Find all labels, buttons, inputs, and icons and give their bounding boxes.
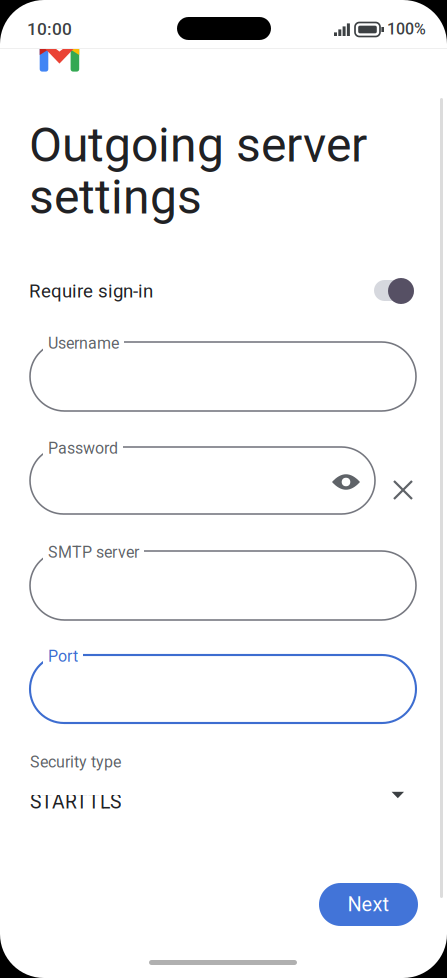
staticText: Port: [48, 647, 78, 666]
staticText: Next: [347, 893, 389, 916]
button[interactable]: Require sign-in: [29, 265, 417, 317]
button[interactable]: Clear password: [0, 0, 447, 978]
staticText: Username: [48, 334, 119, 353]
staticText: Outgoing server: [29, 117, 367, 173]
staticText: SMTP server: [48, 543, 139, 562]
staticText: Password: [48, 439, 118, 458]
staticText: Require sign-in: [29, 280, 153, 302]
button[interactable]: Next: [319, 883, 418, 926]
staticText: 10:00: [27, 19, 72, 39]
button[interactable]: Security type: [30, 752, 418, 816]
staticText: Security type: [30, 753, 121, 771]
staticText: STARTTLS: [30, 791, 121, 813]
staticText: settings: [29, 169, 202, 225]
button[interactable]: Show password: [0, 0, 447, 978]
staticText: 100%: [387, 20, 426, 38]
